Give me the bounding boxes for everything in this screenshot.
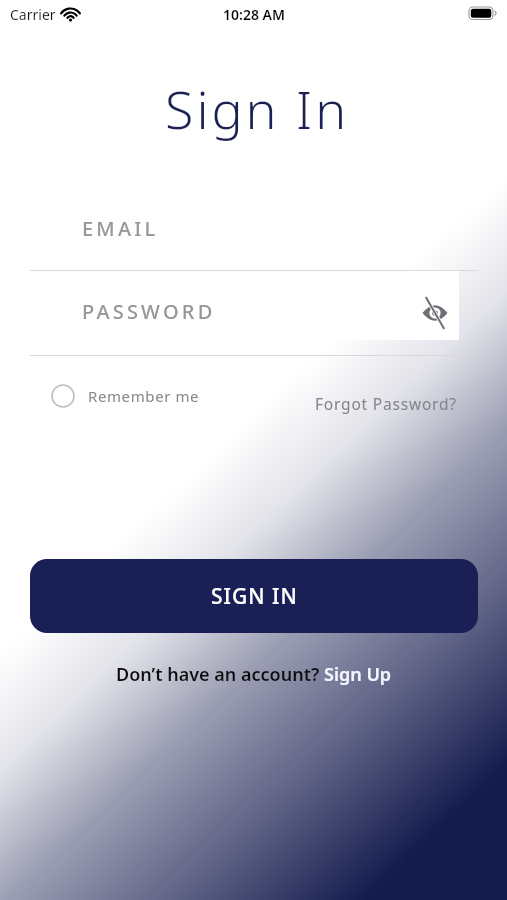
staticText: Forgot Password? xyxy=(315,393,457,414)
staticText: Carrier xyxy=(10,5,56,24)
staticText: Sign In xyxy=(165,73,350,144)
button[interactable]: SIGN IN xyxy=(30,559,478,633)
button[interactable]: PASSWORD xyxy=(30,279,477,343)
button[interactable]: Sign Up xyxy=(324,662,392,687)
staticText: SIGN IN xyxy=(211,582,298,611)
button[interactable]: EMAIL xyxy=(30,196,477,260)
staticText: Sign Up xyxy=(324,662,392,687)
button[interactable]: Remember me xyxy=(51,384,200,408)
staticText: PASSWORD xyxy=(82,298,216,325)
staticText: Remember me xyxy=(88,386,200,406)
button[interactable]: Forgot Password? xyxy=(315,393,457,414)
staticText: EMAIL xyxy=(82,215,159,242)
staticText: Don’t have an account? xyxy=(116,662,324,687)
button[interactable] xyxy=(420,298,450,328)
staticText: 10:28 AM xyxy=(223,5,285,24)
